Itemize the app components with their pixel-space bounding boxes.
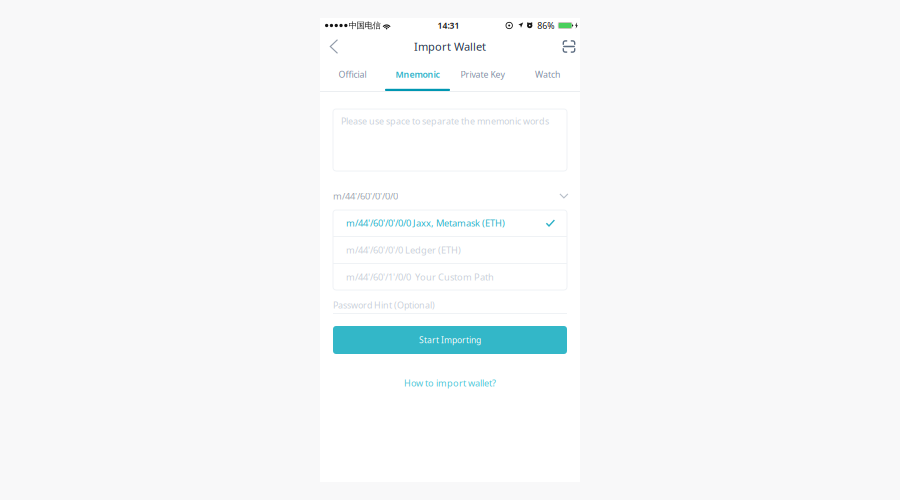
button[interactable]: Scan QR code [555,33,583,60]
button[interactable]: Start Importing [333,326,567,354]
staticText: m/44'/60'/0'/0/0 Jaxx, Metamask (ETH) [346,217,505,229]
staticText: m/44'/60'/1'/0/0 Your Custom Path [346,271,494,283]
staticText: Import Wallet [414,39,486,54]
staticText: How to import wallet? [404,377,496,389]
staticText: Private Key [460,68,504,80]
button[interactable]: How to import wallet? [333,371,567,395]
button[interactable]: Private Key [450,60,515,91]
staticText: Mnemonic [395,68,439,80]
staticText: m/44'/60'/0'/0 Ledger (ETH) [346,244,461,256]
staticText: 中国电信 [348,20,380,31]
staticText: Official [338,68,366,80]
button[interactable]: m/44'/60'/0'/0/0 [333,185,567,207]
button[interactable]: m/44'/60'/0'/0/0 Jaxx, Metamask (ETH) [333,210,567,236]
staticText: Please use space to separate the mnemoni… [341,115,549,127]
button[interactable]: Back [320,33,348,60]
staticText: Watch [535,68,560,80]
button[interactable]: Mnemonic [385,60,450,91]
staticText: m/44'/60'/0'/0/0 [333,190,398,202]
staticText: 14:31 [438,20,460,31]
button[interactable]: m/44'/60'/1'/0/0 Your Custom Path [333,264,567,290]
button[interactable]: Watch [515,60,580,91]
button[interactable]: m/44'/60'/0'/0 Ledger (ETH) [333,237,567,263]
staticText: Password Hint (Optional) [333,299,435,311]
staticText: 86% [537,19,554,31]
staticText: Start Importing [419,334,481,346]
button[interactable]: Official [320,60,385,91]
